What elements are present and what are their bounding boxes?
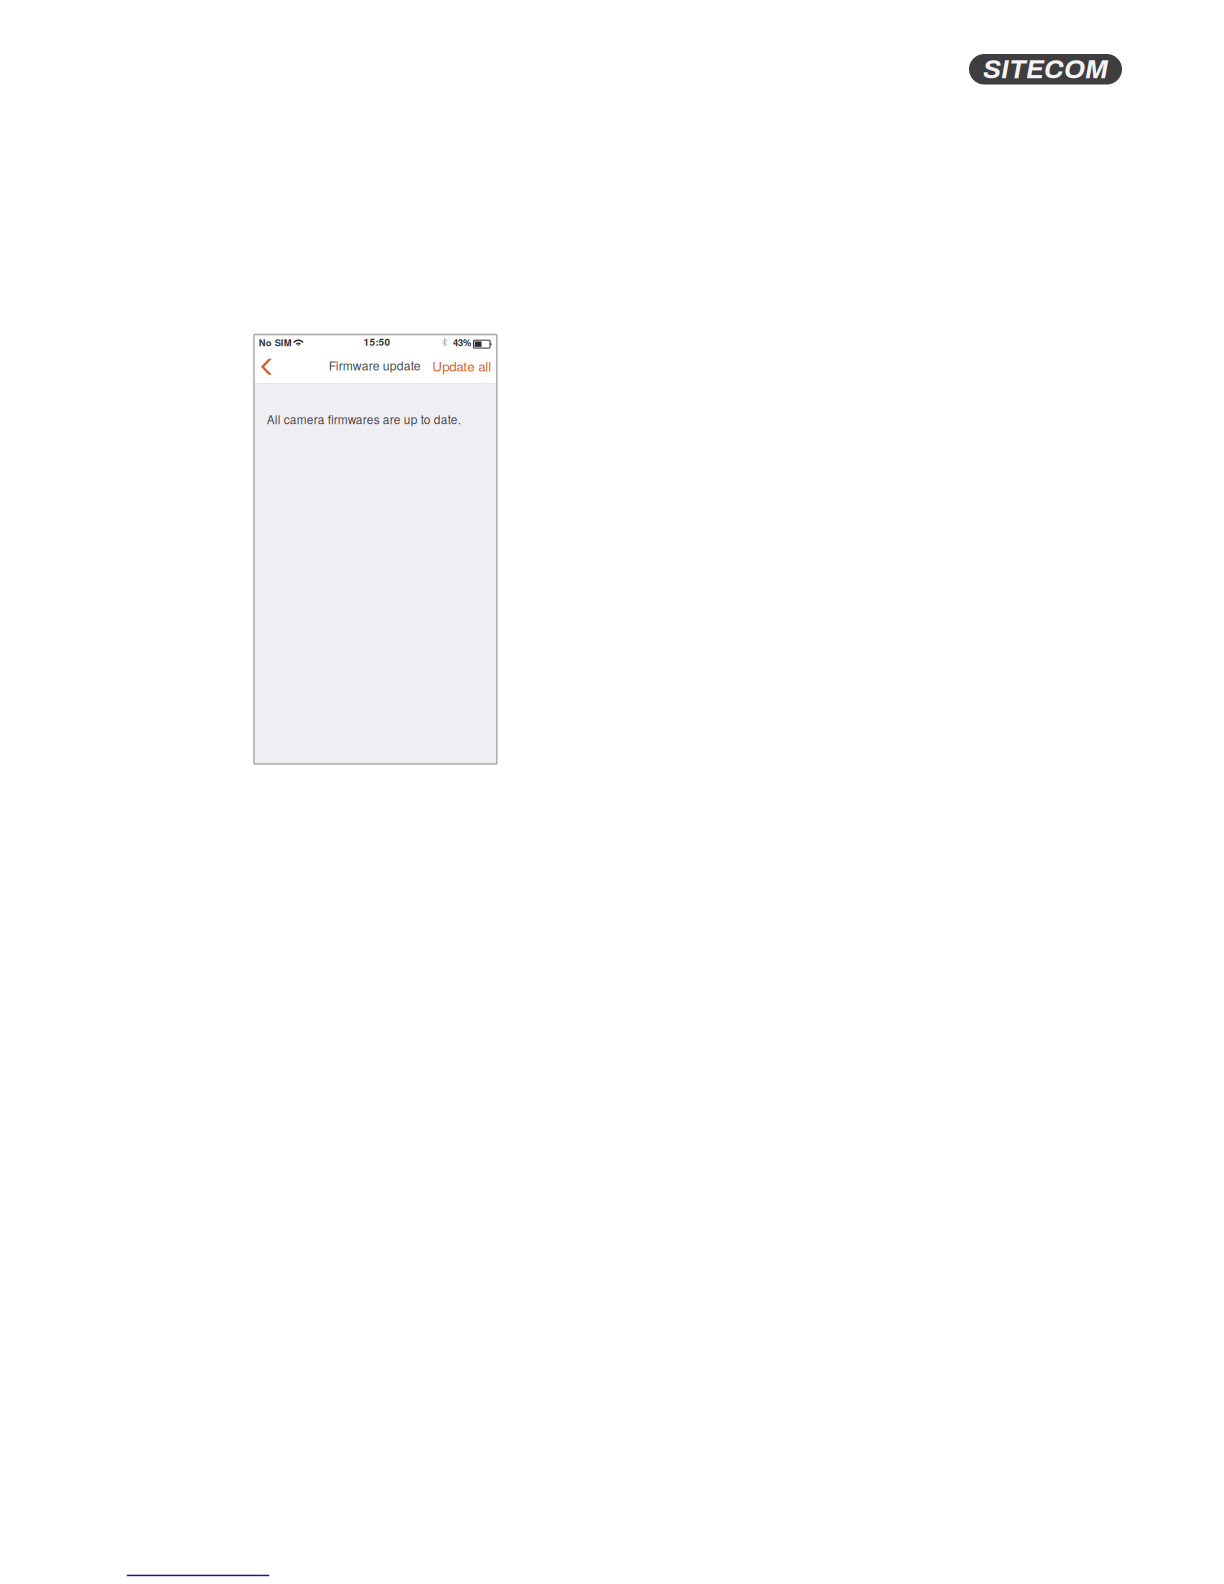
staticText: All camera firmwares are up to date. [267, 411, 461, 428]
button[interactable]: Update all [419, 351, 497, 384]
staticText: 15:50 [363, 334, 390, 349]
button[interactable]: Back [254, 351, 286, 384]
staticText: Update all [432, 356, 491, 375]
staticText: Firmware update [329, 357, 421, 374]
staticText: 43% [453, 336, 471, 349]
staticText: No SIM [259, 336, 292, 349]
staticText: SITECOM [983, 55, 1108, 84]
